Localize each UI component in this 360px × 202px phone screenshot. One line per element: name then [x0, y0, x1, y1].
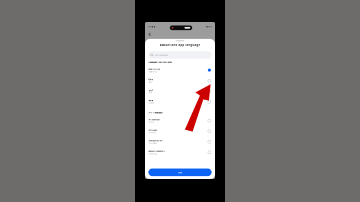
staticText: Bahasa Indonesia	[148, 150, 164, 152]
staticText: All languages	[148, 111, 162, 114]
button[interactable]: Back	[145, 32, 151, 36]
staticText: Hindi	[148, 81, 151, 83]
staticText: Azərbaycan dili	[148, 139, 163, 142]
staticText: Save	[178, 171, 182, 174]
staticText: اردو	[148, 89, 152, 91]
staticText: हिन्दी	[148, 78, 153, 81]
staticText: 4G ▮ 65%	[205, 25, 212, 28]
button[interactable]: اردو	[145, 86, 215, 96]
button[interactable]: Bahasa Indonesia	[145, 147, 215, 158]
staticText: Search languages	[154, 54, 168, 56]
staticText: Account and app language	[159, 43, 200, 47]
button[interactable]: Save	[148, 168, 212, 176]
staticText: Afrikaans	[148, 129, 157, 131]
staticText: Afrikaans	[148, 131, 156, 134]
button[interactable]: Af-Soomaali	[145, 115, 215, 126]
staticText: Languages you may know	[148, 60, 172, 63]
staticText: 11:07 ●●	[148, 25, 156, 28]
staticText: ਪੰਜਾਬੀ	[148, 99, 153, 101]
button[interactable]: Afrikaans	[145, 126, 215, 136]
button[interactable]: हिन्दी	[145, 75, 215, 86]
staticText: English (US)	[148, 67, 160, 70]
button[interactable]: Azərbaycan dili	[145, 136, 215, 147]
staticText: Af-Soomaali	[148, 118, 160, 121]
staticText: English (US)	[148, 70, 157, 73]
button[interactable]: English (US)	[145, 65, 215, 75]
staticText: Indonesian	[148, 153, 157, 155]
button[interactable]: ਪੰਜਾਬੀ	[145, 96, 215, 107]
staticText: Somali	[148, 121, 153, 123]
staticText: Punjabi	[148, 102, 153, 104]
staticText: Azerbaijani	[148, 142, 156, 144]
staticText: Urdu	[148, 91, 152, 94]
